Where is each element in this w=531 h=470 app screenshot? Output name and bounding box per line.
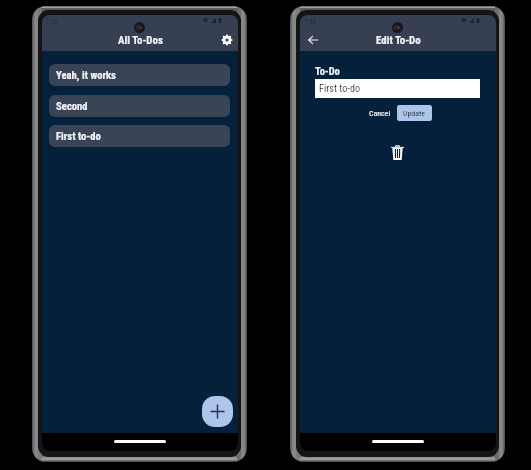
button[interactable]: Back [303,30,322,49]
button[interactable]: Delete [387,142,407,162]
staticText: 7:22 [304,18,316,26]
button[interactable]: Yeah, it works [49,64,230,86]
button[interactable]: First to-do [49,125,230,147]
staticText: Yeah, it works [56,69,116,82]
staticText: First to-do [56,130,101,143]
staticText: All To-Dos [118,34,163,47]
button[interactable]: First to-do [315,79,480,98]
staticText: To-Do [315,65,340,77]
button[interactable]: Update [397,105,432,121]
staticText: Cancel [369,109,391,118]
button[interactable]: Cancel [364,104,396,123]
staticText: 7:22 [46,18,58,26]
staticText: Second [56,100,88,113]
button[interactable]: Settings [217,30,236,49]
button[interactable]: Second [49,95,230,117]
staticText: First to-do [319,83,361,95]
button[interactable]: Add to-do [202,396,233,427]
staticText: Edit To-Do [376,34,421,47]
staticText: Update [403,109,426,118]
